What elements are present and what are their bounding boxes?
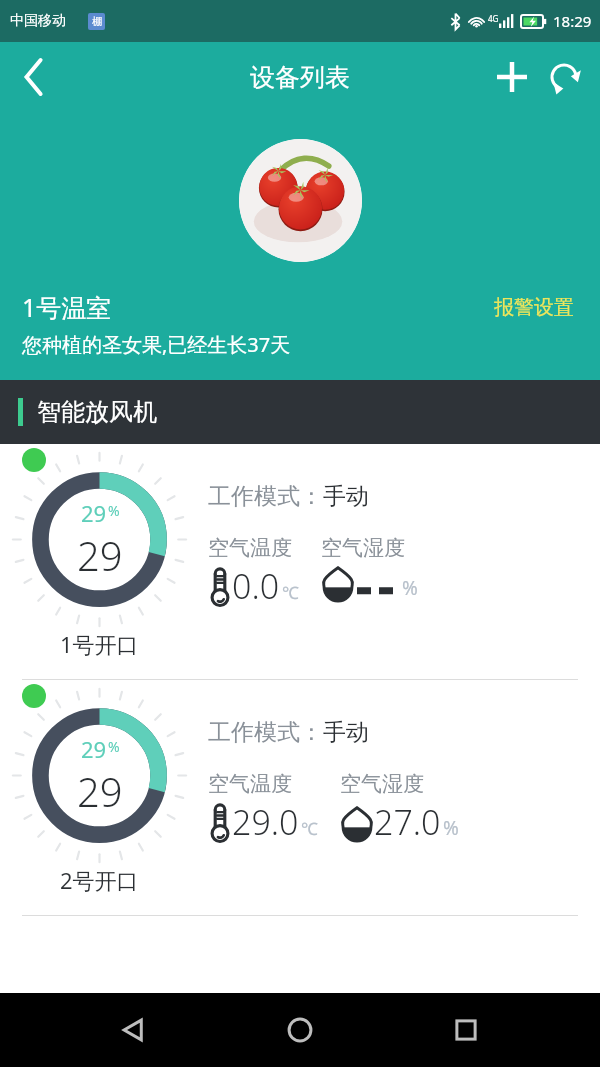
staticText: 29 bbox=[77, 528, 123, 582]
staticText: 手动 bbox=[323, 718, 369, 747]
staticText: 29 bbox=[81, 734, 107, 764]
staticText: 空气温度 bbox=[208, 771, 292, 797]
staticText: % bbox=[108, 737, 120, 756]
button[interactable]: Refresh bbox=[538, 51, 590, 103]
staticText: 4G bbox=[488, 13, 499, 24]
staticText: 1号温室 bbox=[22, 290, 112, 324]
button[interactable]: 29 bbox=[0, 680, 600, 915]
staticText: 29 bbox=[77, 764, 123, 818]
staticText: 中国移动 bbox=[10, 12, 66, 30]
staticText: 手动 bbox=[323, 482, 369, 511]
staticText: 2号开口 bbox=[60, 865, 139, 895]
staticText: 您种植的圣女果,已经生长37天 bbox=[22, 331, 291, 358]
staticText: 棚 bbox=[92, 15, 102, 28]
staticText: % bbox=[108, 501, 120, 520]
staticText: % bbox=[402, 575, 418, 601]
staticText: 0.0 bbox=[232, 563, 280, 609]
staticText: % bbox=[443, 815, 459, 841]
staticText: ℃ bbox=[282, 581, 299, 604]
staticText: 空气湿度 bbox=[321, 535, 405, 561]
staticText: 29 bbox=[81, 498, 107, 528]
staticText: 空气温度 bbox=[208, 535, 292, 561]
button[interactable]: Back bbox=[102, 998, 166, 1062]
button[interactable]: Recents bbox=[434, 998, 498, 1062]
staticText: ℃ bbox=[301, 817, 318, 840]
staticText: 27.0 bbox=[374, 799, 441, 845]
staticText: 工作模式： bbox=[208, 718, 323, 747]
staticText: 29.0 bbox=[232, 799, 299, 845]
staticText: 智能放风机 bbox=[37, 397, 157, 427]
button[interactable]: Back bbox=[6, 49, 62, 105]
staticText: 1号开口 bbox=[60, 629, 139, 659]
staticText: 18:29 bbox=[553, 11, 592, 31]
staticText: 报警设置 bbox=[494, 295, 574, 320]
button[interactable]: Home bbox=[268, 998, 332, 1062]
button[interactable]: Add device bbox=[486, 51, 538, 103]
staticText: 设备列表 bbox=[250, 62, 350, 93]
staticText: 工作模式： bbox=[208, 482, 323, 511]
button[interactable]: 29 bbox=[0, 444, 600, 679]
staticText: 空气湿度 bbox=[340, 771, 424, 797]
button[interactable]: 报警设置 bbox=[484, 291, 584, 324]
